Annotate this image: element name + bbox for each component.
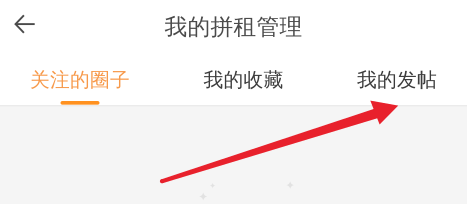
button[interactable]: 关注的圈子	[0, 55, 160, 105]
button[interactable]: 我的收藏	[160, 55, 327, 105]
staticText: 我的拼租管理	[164, 13, 302, 41]
button[interactable]: 我的发帖	[327, 55, 467, 105]
staticText: 我的发帖	[357, 68, 437, 92]
staticText: 关注的圈子	[30, 68, 130, 92]
button[interactable]: Back	[0, 0, 44, 44]
staticText: 我的收藏	[203, 68, 283, 92]
